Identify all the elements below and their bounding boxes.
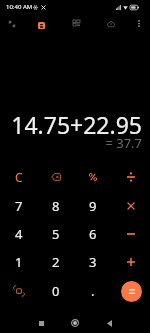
button[interactable]: Divide bbox=[112, 163, 150, 191]
staticText: 7 bbox=[15, 197, 23, 215]
button[interactable]: 5 bbox=[37, 220, 74, 248]
button[interactable]: Expand bbox=[1, 13, 23, 35]
button[interactable]: 7 bbox=[0, 192, 37, 220]
button[interactable]: 0 bbox=[37, 277, 74, 305]
staticText: 5 bbox=[52, 225, 60, 243]
staticText: 0 bbox=[52, 282, 60, 300]
button[interactable]: 3 bbox=[74, 248, 112, 276]
button[interactable]: C bbox=[0, 163, 37, 191]
button[interactable]: Recents bbox=[30, 312, 52, 333]
button[interactable]: 6 bbox=[74, 220, 112, 248]
staticText: C bbox=[15, 169, 23, 185]
button[interactable]: 9 bbox=[74, 192, 112, 220]
button[interactable]: 1 bbox=[0, 248, 37, 276]
staticText: 8 bbox=[52, 197, 60, 215]
button[interactable]: Premium bbox=[100, 13, 122, 35]
staticText: 9 bbox=[89, 197, 97, 215]
staticText: . bbox=[91, 282, 95, 300]
staticText: = 37.7 bbox=[105, 134, 142, 152]
button[interactable]: Converter bbox=[65, 12, 87, 34]
staticText: 1 bbox=[15, 253, 23, 271]
button[interactable]: Backspace bbox=[37, 163, 74, 191]
button[interactable]: Equals bbox=[112, 277, 150, 305]
button[interactable]: Minus bbox=[112, 220, 150, 248]
button[interactable]: Parentheses bbox=[0, 277, 37, 305]
button[interactable]: More options bbox=[130, 14, 148, 32]
button[interactable]: Calculator bbox=[30, 14, 52, 36]
button[interactable]: Percent bbox=[74, 163, 112, 191]
staticText: 2 bbox=[52, 253, 60, 271]
staticText: 10:40 AM bbox=[6, 3, 33, 11]
button[interactable]: 8 bbox=[37, 192, 74, 220]
button[interactable]: 2 bbox=[37, 248, 74, 276]
button[interactable]: Home bbox=[64, 312, 86, 333]
button[interactable]: Back bbox=[98, 312, 120, 333]
button[interactable]: . bbox=[74, 277, 112, 305]
staticText: 4 bbox=[15, 225, 23, 243]
staticText: 3 bbox=[89, 253, 97, 271]
button[interactable]: 4 bbox=[0, 220, 37, 248]
staticText: 6 bbox=[89, 225, 97, 243]
staticText: 14.75+22.95 bbox=[11, 109, 142, 140]
button[interactable]: Multiply bbox=[112, 192, 150, 220]
button[interactable]: Plus bbox=[112, 248, 150, 276]
